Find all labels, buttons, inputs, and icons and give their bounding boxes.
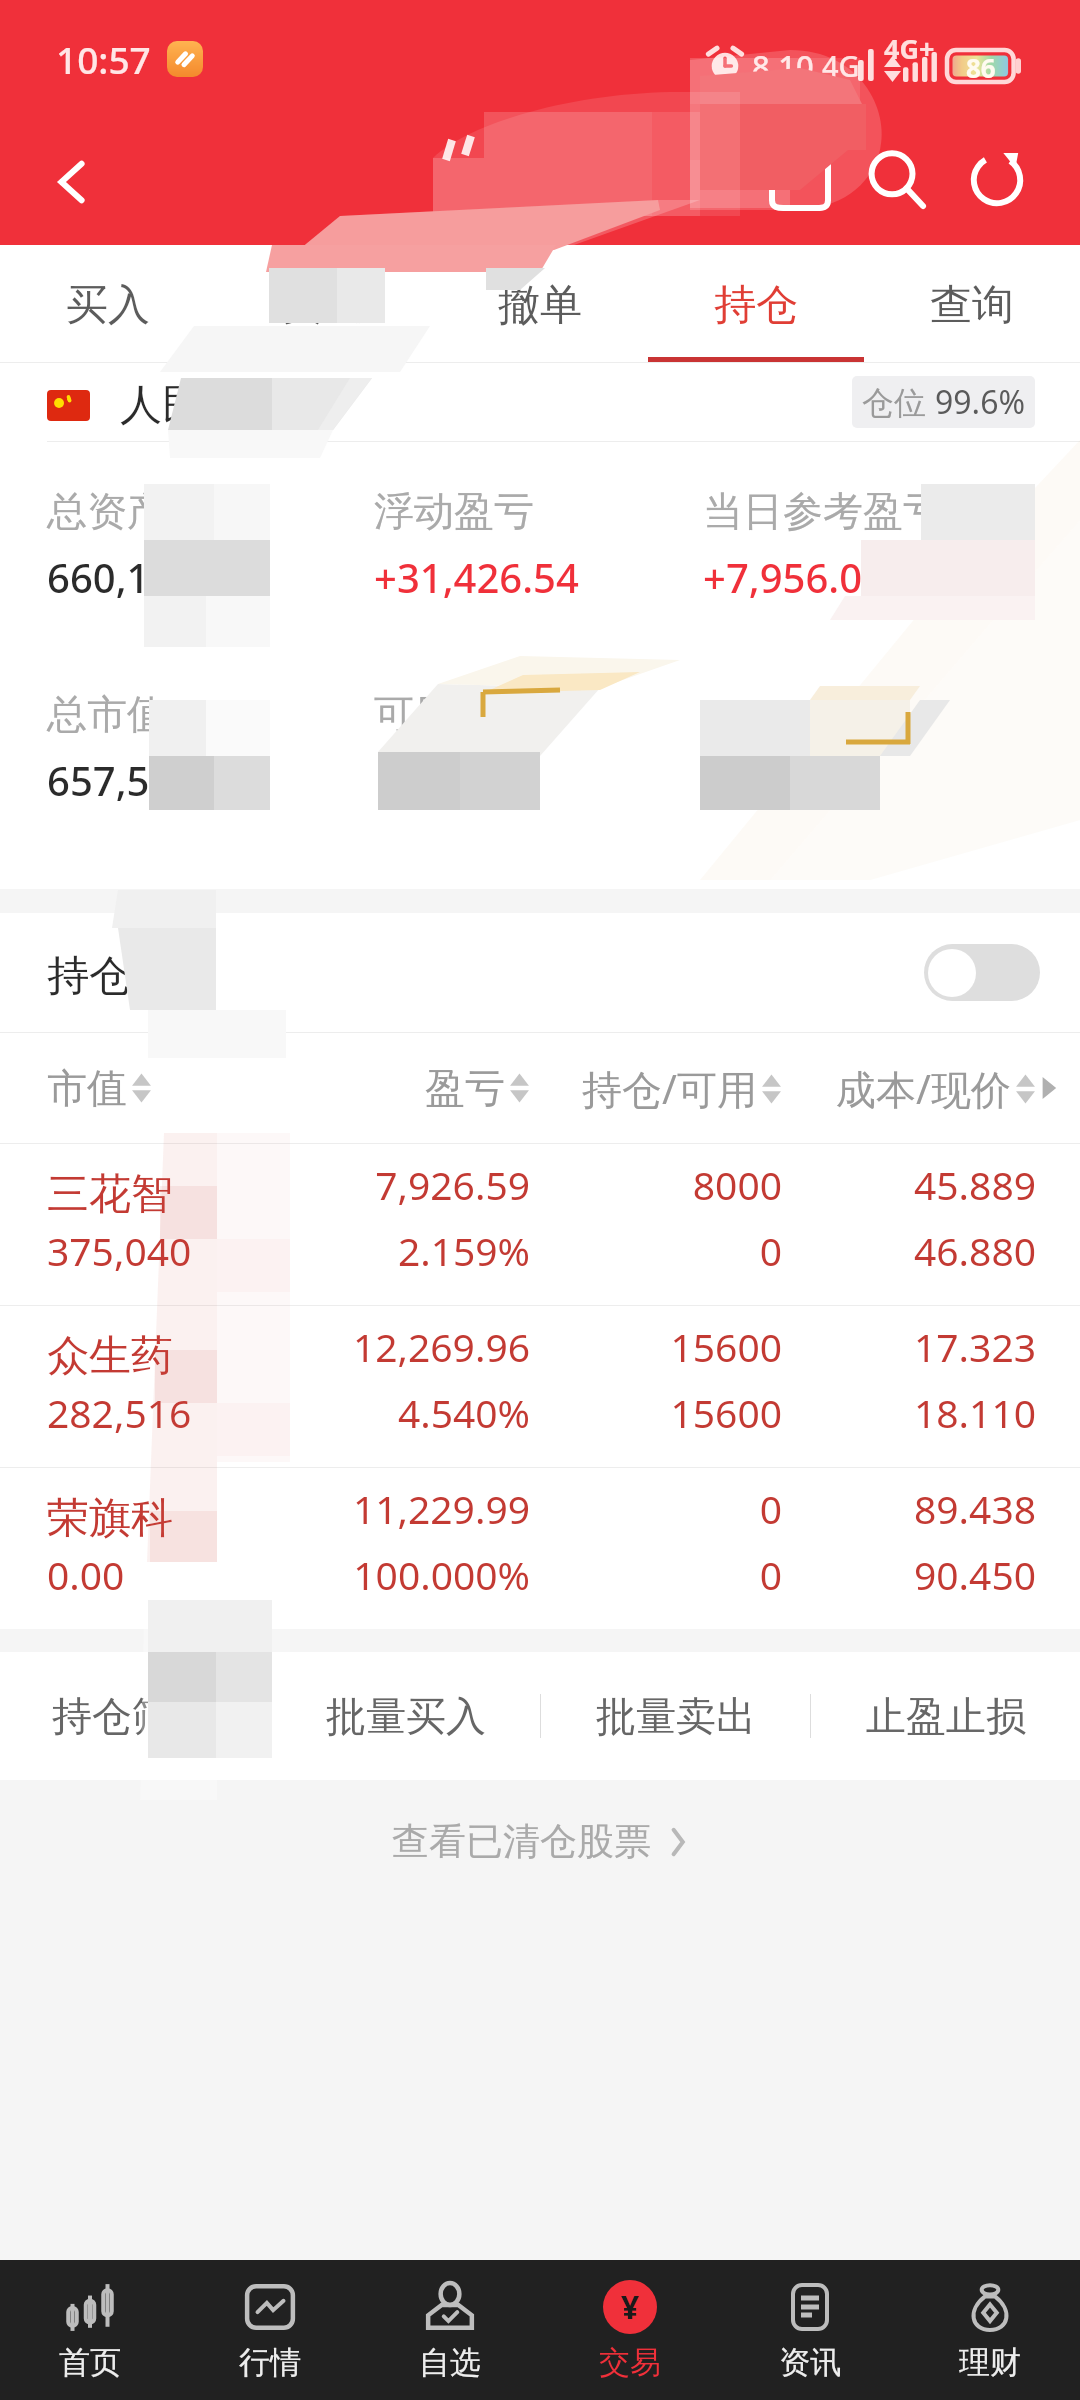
staticText: 282,516 <box>47 1386 316 1439</box>
staticText: 46.880 <box>782 1224 1036 1277</box>
staticText: 买入 <box>66 279 150 332</box>
staticText: 7,926.59 <box>316 1158 530 1211</box>
staticText: 45.889 <box>782 1158 1036 1211</box>
staticText: 4.540% <box>316 1386 530 1439</box>
button[interactable]: ¥ <box>540 2260 720 2400</box>
button[interactable]: 仓位 <box>852 376 1035 428</box>
staticText: 660,1 <box>47 550 150 604</box>
staticText: 2.159% <box>316 1224 530 1277</box>
staticText: 8.10 <box>752 45 814 87</box>
button[interactable]: 三花智 <box>0 1144 1080 1305</box>
staticText: 盈亏 <box>425 1063 505 1113</box>
button[interactable]: Messages <box>752 132 848 228</box>
button[interactable]: 盈亏 <box>425 1063 530 1113</box>
staticText: 总资产 <box>47 486 167 536</box>
staticText: 90.450 <box>782 1548 1036 1601</box>
staticText: +31,426.54 <box>374 550 579 604</box>
staticText: 可用 <box>374 689 454 739</box>
staticText: 当日参考盈亏 <box>703 486 943 536</box>
staticText: 三花智 <box>47 1168 173 1221</box>
staticText: 持仓 <box>714 279 798 332</box>
staticText: 持仓筛选 <box>52 1691 212 1741</box>
button[interactable]: 理财 <box>900 2260 1080 2400</box>
staticText: 批量卖出 <box>596 1691 756 1741</box>
staticText: 86 <box>966 50 996 82</box>
button[interactable]: 持仓/可用 <box>582 1061 782 1116</box>
staticText: 资讯 <box>779 2343 841 2382</box>
staticText: 浮动盈亏 <box>374 486 534 536</box>
staticText: 市值 <box>47 1063 127 1113</box>
button[interactable]: 自选 <box>360 2260 540 2400</box>
button[interactable]: More columns <box>1038 1077 1060 1099</box>
staticText: 10:57 <box>56 34 151 84</box>
staticText: 657,5 <box>47 753 150 807</box>
button[interactable]: 卖出 <box>216 245 432 363</box>
staticText: 首页 <box>59 2343 121 2382</box>
button[interactable]: 众生药 <box>0 1306 1080 1467</box>
staticText: 15600 <box>530 1386 782 1439</box>
staticText: 批量买入 <box>326 1691 486 1741</box>
staticText: 100.000% <box>316 1548 530 1601</box>
button[interactable]: 撤单 <box>432 245 648 363</box>
staticText: 查询 <box>930 279 1014 332</box>
staticText: 12,269.96 <box>316 1320 530 1373</box>
staticText: 人民币 <box>120 379 246 432</box>
staticText: 成本/现价 <box>836 1061 1011 1116</box>
button[interactable]: Back <box>32 142 112 222</box>
button[interactable]: 首页 <box>0 2260 180 2400</box>
staticText: 仓位 <box>862 380 935 424</box>
button[interactable]: 荣旗科 <box>0 1468 1080 1629</box>
button[interactable]: 批量买入 <box>271 1652 540 1780</box>
staticText: 0 <box>530 1224 782 1277</box>
staticText: 17.323 <box>782 1320 1036 1373</box>
button[interactable]: 查看已清仓股票 <box>368 1806 713 1877</box>
button[interactable]: 持仓 <box>648 245 864 363</box>
button[interactable]: 查询 <box>864 245 1080 363</box>
button[interactable]: 市值 <box>47 1063 152 1113</box>
staticText: 18.110 <box>782 1386 1036 1439</box>
staticText: +7,956.0 <box>703 550 863 604</box>
button[interactable]: 买入 <box>0 245 216 363</box>
staticText: 持仓 <box>47 950 131 1003</box>
staticText: 荣旗科 <box>47 1492 173 1545</box>
staticText: 理财 <box>959 2343 1021 2382</box>
button[interactable]: 持仓筛选 <box>0 1652 271 1780</box>
staticText: 0 <box>530 1482 782 1535</box>
staticText: 15600 <box>530 1320 782 1373</box>
staticText: 查看已清仓股票 <box>392 1818 651 1865</box>
staticText: 375,040 <box>47 1224 316 1277</box>
staticText: 11,229.99 <box>316 1482 530 1535</box>
staticText: 自选 <box>419 2343 481 2382</box>
staticText: 总市值 <box>47 689 167 739</box>
button[interactable]: Search <box>849 132 945 228</box>
staticText: 8000 <box>530 1158 782 1211</box>
staticText: 0 <box>530 1548 782 1601</box>
staticText: 交易 <box>599 2343 661 2382</box>
button[interactable]: Refresh <box>949 132 1045 228</box>
staticText: 行情 <box>239 2343 301 2382</box>
button[interactable]: 止盈止损 <box>811 1652 1080 1780</box>
button[interactable]: 行情 <box>180 2260 360 2400</box>
staticText: 89.438 <box>782 1482 1036 1535</box>
button[interactable]: 批量卖出 <box>541 1652 810 1780</box>
staticText: 4G+ <box>884 30 935 67</box>
staticText: 止盈止损 <box>866 1691 1026 1741</box>
button[interactable]: 成本/现价 <box>836 1061 1036 1116</box>
staticText: 撤单 <box>498 279 582 332</box>
staticText: 持仓/可用 <box>582 1061 757 1116</box>
button[interactable]: Toggle hide positions <box>924 944 1040 1001</box>
staticText: 众生药 <box>47 1330 173 1383</box>
staticText: 99.6% <box>935 380 1026 424</box>
staticText: ¥ <box>621 2285 640 2329</box>
staticText: 4G <box>822 46 860 85</box>
staticText: 0.00 <box>47 1548 316 1601</box>
button[interactable]: 资讯 <box>720 2260 900 2400</box>
staticText: 卖出 <box>282 279 366 332</box>
